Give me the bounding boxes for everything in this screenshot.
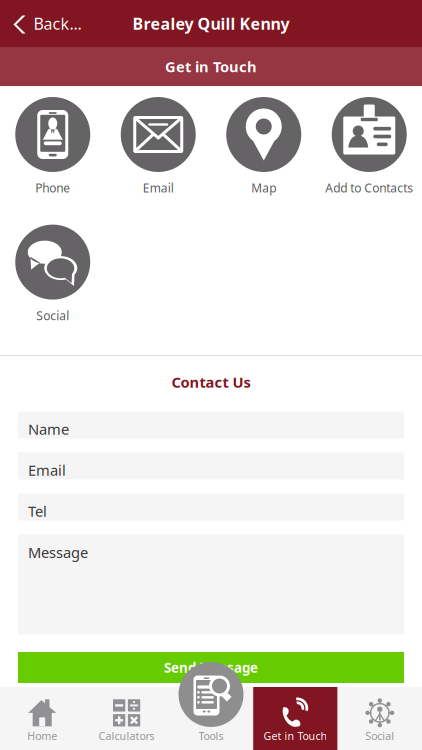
staticText: Social [365,729,394,743]
button[interactable]: Social [0,225,105,352]
staticText: Send Message [164,659,258,676]
staticText: Message [28,542,88,562]
staticText: Map [251,180,276,196]
button[interactable]: Tools [178,662,243,727]
staticText: Email [28,460,66,480]
staticText: Get in Touch [165,57,257,76]
staticText: Name [28,419,69,439]
staticText: Get in Touch [263,729,327,743]
button[interactable]: Send Message [0,652,422,683]
button[interactable]: Phone [0,97,105,225]
staticText: Phone [35,180,70,196]
button[interactable]: Map [211,97,316,225]
button[interactable]: Get in Touch [253,687,338,750]
staticText: Back... [33,13,81,34]
button[interactable]: Home [0,687,84,750]
staticText: Brealey Quill Kenny [132,13,289,34]
staticText: Home [27,729,57,743]
button[interactable]: Calculators [84,687,169,750]
button[interactable]: Email [105,97,211,225]
staticText: Social [36,308,69,323]
button[interactable]: Social [338,687,422,750]
staticText: Tel [28,501,47,521]
staticText: Contact Us [171,372,250,392]
button[interactable]: Back... [0,1,91,46]
staticText: Tools [198,729,223,743]
staticText: Email [143,180,174,196]
staticText: Add to Contacts [325,180,413,196]
button[interactable]: Add to Contacts [316,97,422,225]
staticText: Calculators [99,729,155,743]
button[interactable]: Tools [169,687,253,750]
